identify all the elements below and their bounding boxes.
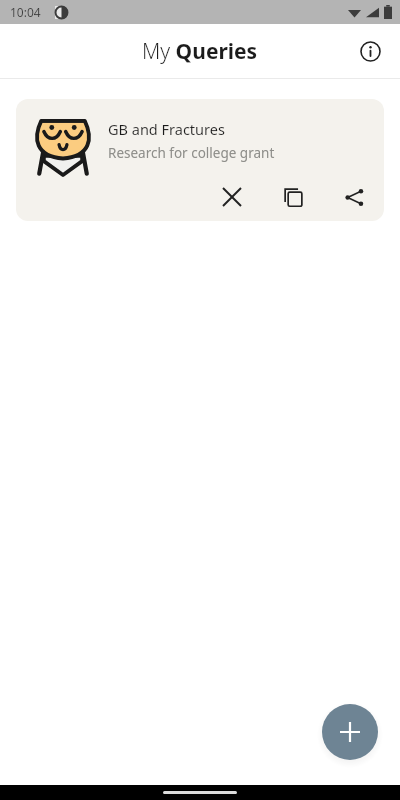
- staticText: My Queries: [142, 37, 258, 66]
- staticText: GB and Fractures: [108, 119, 225, 139]
- button[interactable]: Close: [212, 177, 252, 217]
- button[interactable]: Info: [350, 31, 390, 71]
- staticText: Research for college grant: [108, 144, 275, 162]
- button[interactable]: Add: [322, 704, 378, 760]
- button[interactable]: Copy: [273, 177, 313, 217]
- button[interactable]: Share: [334, 177, 374, 217]
- staticText: 10:04: [10, 4, 41, 20]
- button[interactable]: GB and Fractures: [16, 99, 384, 221]
